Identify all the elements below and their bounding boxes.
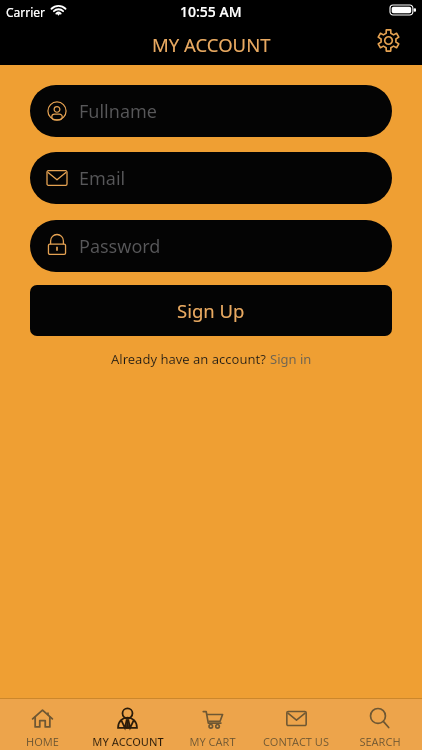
button[interactable]: SEARCH — [338, 699, 422, 750]
button[interactable]: Password — [30, 220, 392, 272]
staticText: MY ACCOUNT — [92, 734, 164, 749]
staticText: Sign in — [270, 350, 312, 368]
button[interactable]: MY ACCOUNT — [85, 699, 170, 750]
button[interactable]: Settings — [376, 28, 400, 52]
button[interactable]: HOME — [0, 699, 85, 750]
button[interactable]: Sign Up — [30, 285, 392, 336]
staticText: Password — [79, 234, 161, 259]
staticText: 10:55 AM — [180, 2, 242, 21]
staticText: MY ACCOUNT — [152, 32, 271, 57]
staticText: Fullname — [79, 99, 157, 124]
staticText: SEARCH — [359, 734, 401, 749]
button[interactable]: CONTACT US — [254, 699, 338, 750]
button[interactable]: MY CART — [170, 699, 254, 750]
button[interactable]: Email — [30, 152, 392, 204]
staticText: Email — [79, 166, 126, 191]
staticText: Carrier — [6, 4, 46, 20]
button[interactable]: Fullname — [30, 85, 392, 137]
button[interactable]: Sign in — [270, 350, 312, 368]
staticText: Sign Up — [177, 298, 245, 323]
staticText: HOME — [26, 734, 59, 749]
staticText: MY CART — [189, 734, 236, 749]
staticText: CONTACT US — [263, 734, 329, 749]
staticText: Already have an account? — [111, 350, 270, 368]
